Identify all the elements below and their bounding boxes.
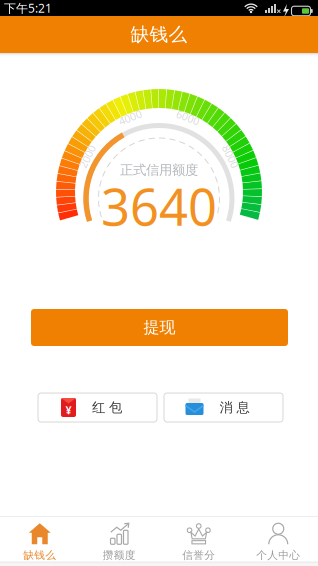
staticText: ¥ <box>65 403 71 417</box>
staticText: 3640 <box>101 172 217 240</box>
button[interactable]: 提现 <box>31 309 288 346</box>
staticText: 攒额度 <box>103 549 136 562</box>
button[interactable]: 消 息 <box>164 393 283 422</box>
button[interactable]: 信誉分 <box>159 520 238 559</box>
staticText: 消 息 <box>219 399 249 416</box>
staticText: 缺钱么 <box>23 549 56 562</box>
button[interactable]: 个人中心 <box>238 520 318 559</box>
staticText: 正式信用额度 <box>120 162 198 178</box>
button[interactable]: 攒额度 <box>79 520 159 559</box>
button[interactable]: 缺钱么 <box>0 520 79 559</box>
staticText: 个人中心 <box>256 549 300 562</box>
staticText: 8000 <box>219 149 243 163</box>
staticText: 红 包 <box>92 399 122 416</box>
staticText: 信誉分 <box>182 549 215 562</box>
button[interactable]: ¥ <box>38 393 157 422</box>
staticText: 缺钱么 <box>130 23 187 46</box>
staticText: 4000 <box>118 110 142 124</box>
staticText: 6000 <box>176 110 200 124</box>
staticText: 提现 <box>143 318 175 337</box>
staticText: 2000 <box>75 149 99 163</box>
staticText: 下午5:21 <box>4 0 52 16</box>
